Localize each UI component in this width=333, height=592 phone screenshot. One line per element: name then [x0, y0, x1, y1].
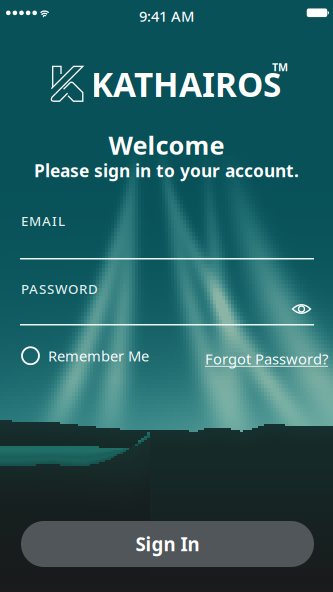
staticText: Please sign in to your account.	[34, 159, 299, 182]
staticText: Forgot Password?	[205, 349, 328, 368]
button[interactable]: Remember Me	[22, 346, 149, 365]
button[interactable]: Sign In	[21, 521, 314, 567]
staticText: Welcome	[108, 128, 224, 162]
staticText: 9:41 AM	[139, 6, 194, 26]
staticText: KATHAIROS	[91, 62, 281, 106]
button[interactable]: Show password	[291, 298, 313, 320]
staticText: PASSWORD	[21, 280, 98, 298]
staticText: TM	[272, 60, 288, 74]
button[interactable]: Forgot Password?	[205, 349, 328, 368]
staticText: EMAIL	[21, 212, 65, 230]
staticText: Sign In	[135, 532, 199, 556]
staticText: Remember Me	[48, 346, 149, 365]
